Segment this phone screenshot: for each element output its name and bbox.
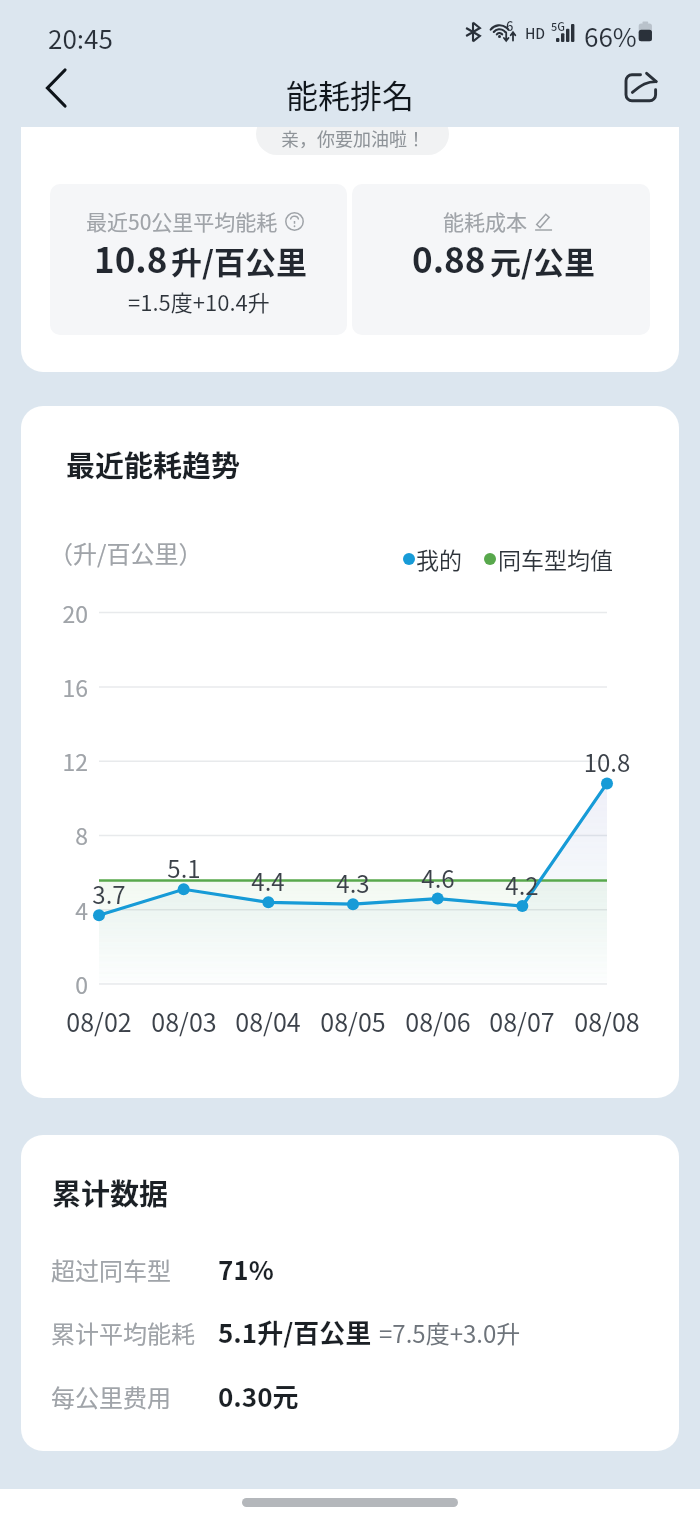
button[interactable]: 最近50公里平均能耗 <box>50 184 347 335</box>
staticText: 0 <box>21 967 88 1000</box>
staticText: 5.1升/百公里 <box>218 1313 372 1351</box>
staticText: 8 <box>21 818 88 851</box>
staticText: 3.7 <box>59 876 159 911</box>
staticText: 5G <box>551 18 565 34</box>
staticText: 超过同车型 <box>51 1252 218 1287</box>
staticText: 4.6 <box>388 860 488 895</box>
staticText: 08/07 <box>472 1003 572 1039</box>
staticText: 能耗成本 <box>443 206 527 236</box>
staticText: 20:45 <box>48 19 113 57</box>
staticText: 累计数据 <box>52 1171 169 1213</box>
staticText: 4.4 <box>218 863 318 898</box>
staticText: 16 <box>21 670 88 703</box>
staticText: 10.8 <box>94 232 168 283</box>
staticText: 10.8 <box>557 744 657 779</box>
staticText: 08/06 <box>388 1003 488 1039</box>
staticText: 元/公里 <box>490 238 595 283</box>
staticText: 66% <box>584 17 637 55</box>
staticText: （升/百公里） <box>49 535 203 570</box>
staticText: 最近50公里平均能耗 <box>86 206 278 236</box>
staticText: 4.3 <box>303 865 403 900</box>
staticText: 同车型均值 <box>498 542 613 575</box>
staticText: 4.2 <box>472 867 572 902</box>
staticText: 亲，你要加油啦！ <box>281 127 425 151</box>
staticText: 5.1 <box>134 850 234 885</box>
staticText: 升/百公里 <box>171 238 307 283</box>
staticText: 08/08 <box>557 1003 657 1039</box>
staticText: 每公里费用 <box>51 1379 218 1414</box>
staticText: =1.5度+10.4升 <box>128 285 270 317</box>
staticText: =7.5度+3.0升 <box>379 1315 521 1350</box>
staticText: HD <box>525 23 546 43</box>
button[interactable]: Share <box>615 65 667 111</box>
staticText: 71% <box>218 1250 274 1288</box>
staticText: 08/05 <box>303 1003 403 1039</box>
staticText: 0.88 <box>412 232 486 283</box>
staticText: 4 <box>21 893 88 926</box>
staticText: 12 <box>21 744 88 777</box>
staticText: 0.30元 <box>218 1377 299 1415</box>
button[interactable]: 能耗成本 <box>352 184 650 335</box>
staticText: 08/04 <box>218 1003 318 1039</box>
button[interactable]: Back <box>26 54 86 121</box>
staticText: 我的 <box>416 542 462 575</box>
staticText: 08/02 <box>49 1003 149 1039</box>
staticText: 累计平均能耗 <box>51 1315 218 1350</box>
staticText: 最近能耗趋势 <box>66 443 241 485</box>
staticText: 08/03 <box>134 1003 234 1039</box>
staticText: 6 <box>506 16 514 35</box>
staticText: 20 <box>21 596 88 629</box>
staticText: 能耗排名 <box>286 71 415 117</box>
